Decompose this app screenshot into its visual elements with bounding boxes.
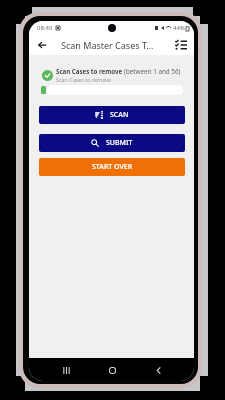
button[interactable]: Checklist bbox=[170, 34, 191, 55]
button[interactable]: SUBMIT bbox=[39, 134, 185, 152]
button[interactable]: Home bbox=[104, 362, 120, 378]
button[interactable]: Back bbox=[150, 362, 166, 378]
button[interactable]: Recents bbox=[58, 362, 74, 378]
staticText: SUBMIT bbox=[106, 138, 133, 148]
staticText: Scan Master Cases T… bbox=[61, 39, 170, 51]
staticText: Scan Cases to remove bbox=[56, 67, 124, 75]
button[interactable]: START OVER bbox=[39, 158, 185, 176]
staticText: 44% bbox=[173, 24, 185, 32]
button[interactable]: SCAN bbox=[39, 106, 185, 124]
staticText: 08:45 bbox=[37, 24, 53, 32]
button[interactable]: Back bbox=[29, 34, 55, 55]
staticText: Scan Cases to remove bbox=[56, 76, 112, 83]
staticText: SCAN bbox=[110, 110, 129, 120]
staticText: (between 1 and 56) bbox=[124, 67, 181, 76]
staticText: START OVER bbox=[92, 162, 133, 172]
